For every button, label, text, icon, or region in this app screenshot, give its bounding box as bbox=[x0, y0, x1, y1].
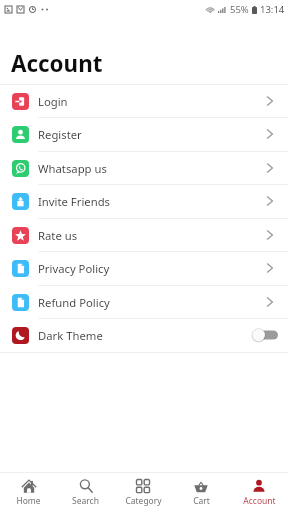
button[interactable]: Category bbox=[114, 473, 172, 512]
button[interactable]: Register bbox=[0, 117, 288, 151]
button[interactable]: Refund Policy bbox=[0, 285, 288, 319]
staticText: Account bbox=[243, 495, 276, 507]
staticText: Whatsapp us bbox=[38, 161, 107, 176]
staticText: Cart bbox=[193, 495, 210, 507]
staticText: Dark Theme bbox=[38, 328, 103, 343]
staticText: 13:14 bbox=[260, 3, 285, 16]
button[interactable]: Search bbox=[57, 473, 114, 512]
staticText: Invite Friends bbox=[38, 194, 111, 209]
button[interactable]: Dark theme toggle bbox=[252, 327, 278, 343]
button[interactable]: Login bbox=[0, 84, 288, 118]
staticText: Search bbox=[72, 495, 99, 507]
staticText: Account bbox=[11, 48, 103, 79]
button[interactable]: Rate us bbox=[0, 218, 288, 252]
staticText: Privacy Policy bbox=[38, 261, 110, 276]
button[interactable]: Privacy Policy bbox=[0, 251, 288, 285]
button[interactable]: Dark Theme bbox=[0, 318, 288, 352]
button[interactable]: Invite Friends bbox=[0, 184, 288, 218]
staticText: Login bbox=[38, 94, 68, 109]
button[interactable]: Whatsapp us bbox=[0, 151, 288, 185]
staticText: Category bbox=[125, 495, 162, 507]
button[interactable]: Account bbox=[230, 473, 288, 512]
button[interactable]: Cart bbox=[172, 473, 230, 512]
staticText: Home bbox=[16, 495, 41, 507]
staticText: Refund Policy bbox=[38, 295, 110, 310]
staticText: 55% bbox=[230, 3, 249, 16]
button[interactable]: Home bbox=[0, 473, 57, 512]
staticText: Register bbox=[38, 127, 82, 142]
staticText: Rate us bbox=[38, 228, 78, 243]
